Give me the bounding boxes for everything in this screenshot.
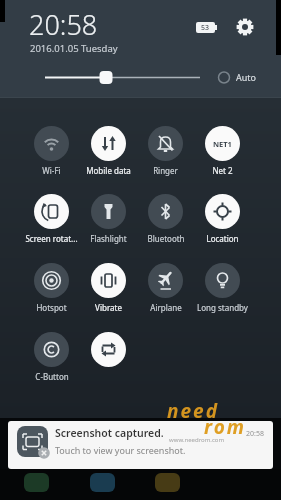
staticText: Touch to view your screenshot. (55, 444, 186, 456)
button[interactable]: Location (194, 194, 251, 244)
staticText: 2016.01.05 Tuesday (30, 42, 118, 55)
staticText: Vibrate (95, 302, 122, 313)
button[interactable]: Vibrate (80, 263, 137, 313)
staticText: 53 (201, 23, 210, 33)
staticText: www.needrom.com (169, 436, 225, 444)
staticText: NET1 (213, 139, 232, 149)
button[interactable]: Auto (236, 71, 257, 83)
button[interactable] (235, 17, 255, 37)
staticText: Long standby (197, 302, 248, 313)
button[interactable]: C-Button (23, 332, 80, 382)
button[interactable]: Airplane (137, 263, 194, 313)
staticText: need (167, 398, 219, 424)
staticText: Flashlight (90, 233, 127, 244)
button[interactable]: Wi-Fi (23, 126, 80, 176)
staticText: rom (204, 414, 246, 440)
button[interactable]: Hotspot (23, 263, 80, 313)
button[interactable]: NET1 (194, 126, 251, 176)
button[interactable]: Screen rotat... (23, 194, 80, 244)
button[interactable]: Flashlight (80, 194, 137, 244)
staticText: Screen rotat... (25, 233, 78, 244)
staticText: 20:58 (246, 429, 264, 439)
button[interactable]: Screenshot captured. (8, 421, 273, 469)
button[interactable]: Bluetooth (137, 194, 194, 244)
staticText: Mobile data (86, 165, 131, 176)
staticText: Net 2 (212, 165, 233, 176)
staticText: Screenshot captured. (55, 426, 164, 440)
button[interactable]: Ringer (137, 126, 194, 176)
staticText: Location (206, 233, 239, 244)
staticText: Ringer (153, 165, 178, 176)
staticText: Airplane (150, 302, 182, 313)
staticText: Hotspot (36, 302, 67, 313)
staticText: Bluetooth (147, 233, 185, 244)
staticText: 20:58 (29, 6, 98, 43)
staticText: Wi-Fi (42, 165, 61, 176)
button[interactable] (80, 332, 137, 382)
button[interactable]: Mobile data (80, 126, 137, 176)
staticText: C-Button (35, 371, 69, 382)
button[interactable]: Long standby (194, 263, 251, 313)
